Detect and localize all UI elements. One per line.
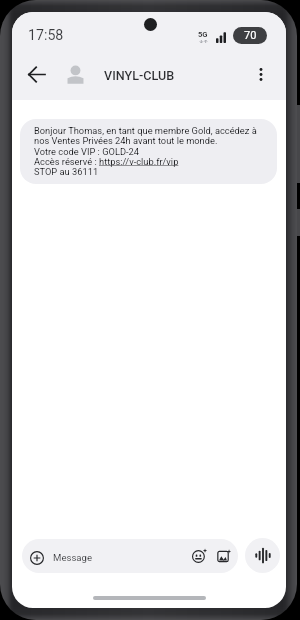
button[interactable]: More options	[245, 52, 277, 96]
button[interactable]: Bonjour Thomas, en tant que membre Gold,…	[20, 119, 277, 184]
staticText: 70	[244, 29, 257, 42]
staticText: 17:58	[28, 27, 64, 44]
staticText: Votre code VIP : GOLD-24	[34, 146, 140, 157]
staticText: STOP au 36111	[34, 166, 99, 177]
staticText: 5G	[198, 30, 208, 39]
staticText: Bonjour Thomas, en tant que membre Gold,…	[34, 125, 257, 136]
button[interactable]: VINYL-CLUB	[92, 52, 163, 96]
button[interactable]: Add image	[213, 545, 235, 567]
button[interactable]: Back	[20, 52, 52, 96]
staticText: Message	[53, 552, 93, 563]
staticText: nos Ventes Privées 24h avant tout le mon…	[34, 135, 218, 146]
staticText: VINYL-CLUB	[104, 68, 175, 83]
button[interactable]: Emoji	[188, 545, 210, 567]
button[interactable]: Voice message	[245, 538, 280, 573]
button[interactable]: Message	[22, 539, 238, 573]
staticText: Accès réservé : https://v-club.fr/vip	[34, 156, 179, 167]
